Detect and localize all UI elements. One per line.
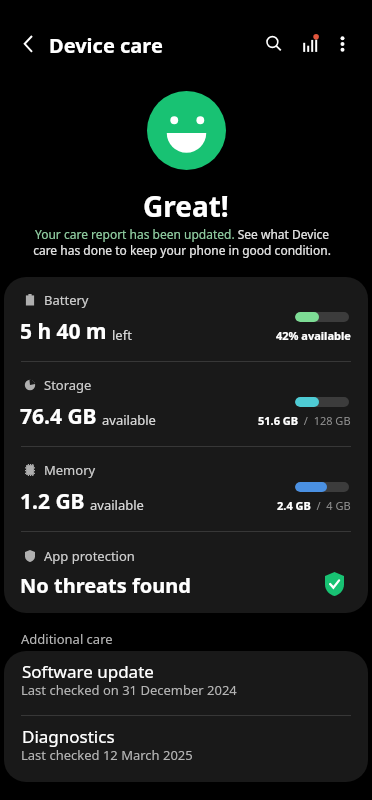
- staticText: Great!: [143, 187, 229, 225]
- staticText: available: [102, 411, 156, 429]
- button[interactable]: Back: [5, 22, 45, 66]
- staticText: Storage: [44, 376, 92, 394]
- staticText: 42% available: [276, 328, 351, 343]
- button[interactable]: Diagnostics: [4, 716, 368, 782]
- staticText: Software update: [22, 660, 154, 683]
- staticText: Battery: [44, 291, 89, 309]
- button[interactable]: Statistics: [289, 21, 331, 63]
- staticText: Your care report has been updated. See w…: [26, 226, 338, 258]
- staticText: 2.4 GB / 4 GB: [277, 498, 351, 513]
- staticText: left: [112, 326, 132, 344]
- button[interactable]: Search: [252, 21, 294, 63]
- staticText: 5 h 40 m: [20, 317, 107, 346]
- staticText: 1.2 GB: [20, 487, 85, 516]
- staticText: App protection: [44, 547, 135, 565]
- staticText: 51.6 GB / 128 GB: [258, 413, 351, 428]
- button[interactable]: Software update: [4, 651, 368, 715]
- staticText: Last checked on 31 December 2024: [21, 681, 237, 699]
- staticText: No threats found: [20, 572, 191, 599]
- button[interactable]: Battery: [4, 277, 368, 361]
- staticText: Additional care: [21, 630, 113, 648]
- staticText: Device care: [49, 32, 163, 59]
- staticText: Memory: [44, 461, 96, 479]
- button[interactable]: App protection: [4, 532, 368, 613]
- button[interactable]: More options: [322, 21, 364, 63]
- staticText: Last checked 12 March 2025: [21, 746, 193, 764]
- button[interactable]: Memory: [4, 447, 368, 531]
- staticText: 76.4 GB: [20, 402, 97, 431]
- staticText: Diagnostics: [22, 725, 115, 748]
- button[interactable]: Storage: [4, 362, 368, 446]
- staticText: available: [90, 496, 144, 514]
